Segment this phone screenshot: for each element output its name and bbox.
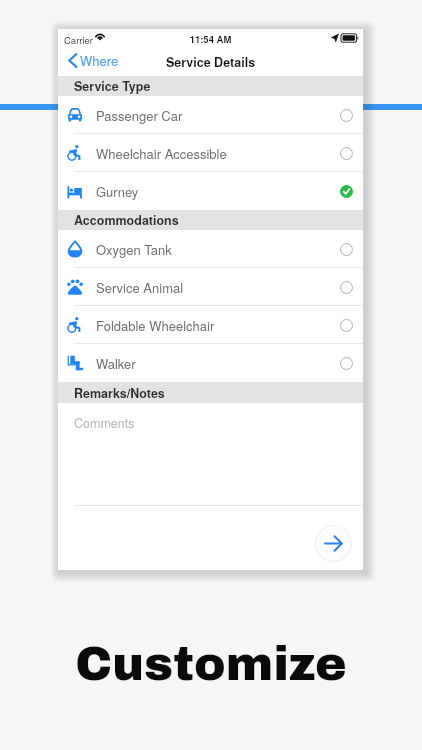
staticText: Foldable Wheelchair	[96, 316, 215, 335]
button[interactable]: Passenger Car	[58, 96, 363, 134]
staticText: Service Animal	[96, 278, 184, 297]
staticText: Passenger Car	[96, 106, 183, 125]
staticText: Service Type	[74, 77, 151, 95]
staticText: Wheelchair Accessible	[96, 144, 227, 163]
button[interactable]: Where	[58, 47, 127, 74]
button[interactable]: Walker	[58, 344, 363, 382]
button[interactable]: Wheelchair Accessible	[58, 134, 363, 172]
staticText: Where	[80, 51, 119, 70]
button[interactable]: Oxygen Tank	[58, 230, 363, 268]
staticText: 11:54 AM	[58, 32, 363, 46]
button[interactable]: Gurney	[58, 172, 363, 210]
staticText: Oxygen Tank	[96, 240, 172, 259]
staticText: Gurney	[96, 182, 139, 201]
button[interactable]: Next	[315, 525, 352, 562]
button[interactable]: Service Animal	[58, 268, 363, 306]
staticText: Customize	[0, 638, 422, 690]
staticText: Service Details	[58, 53, 363, 71]
staticText: Comments	[74, 414, 135, 432]
staticText: Walker	[96, 354, 136, 373]
button[interactable]: Foldable Wheelchair	[58, 306, 363, 344]
staticText: Remarks/Notes	[74, 384, 165, 402]
staticText: Carrier	[64, 33, 94, 47]
staticText: Accommodations	[74, 211, 179, 229]
